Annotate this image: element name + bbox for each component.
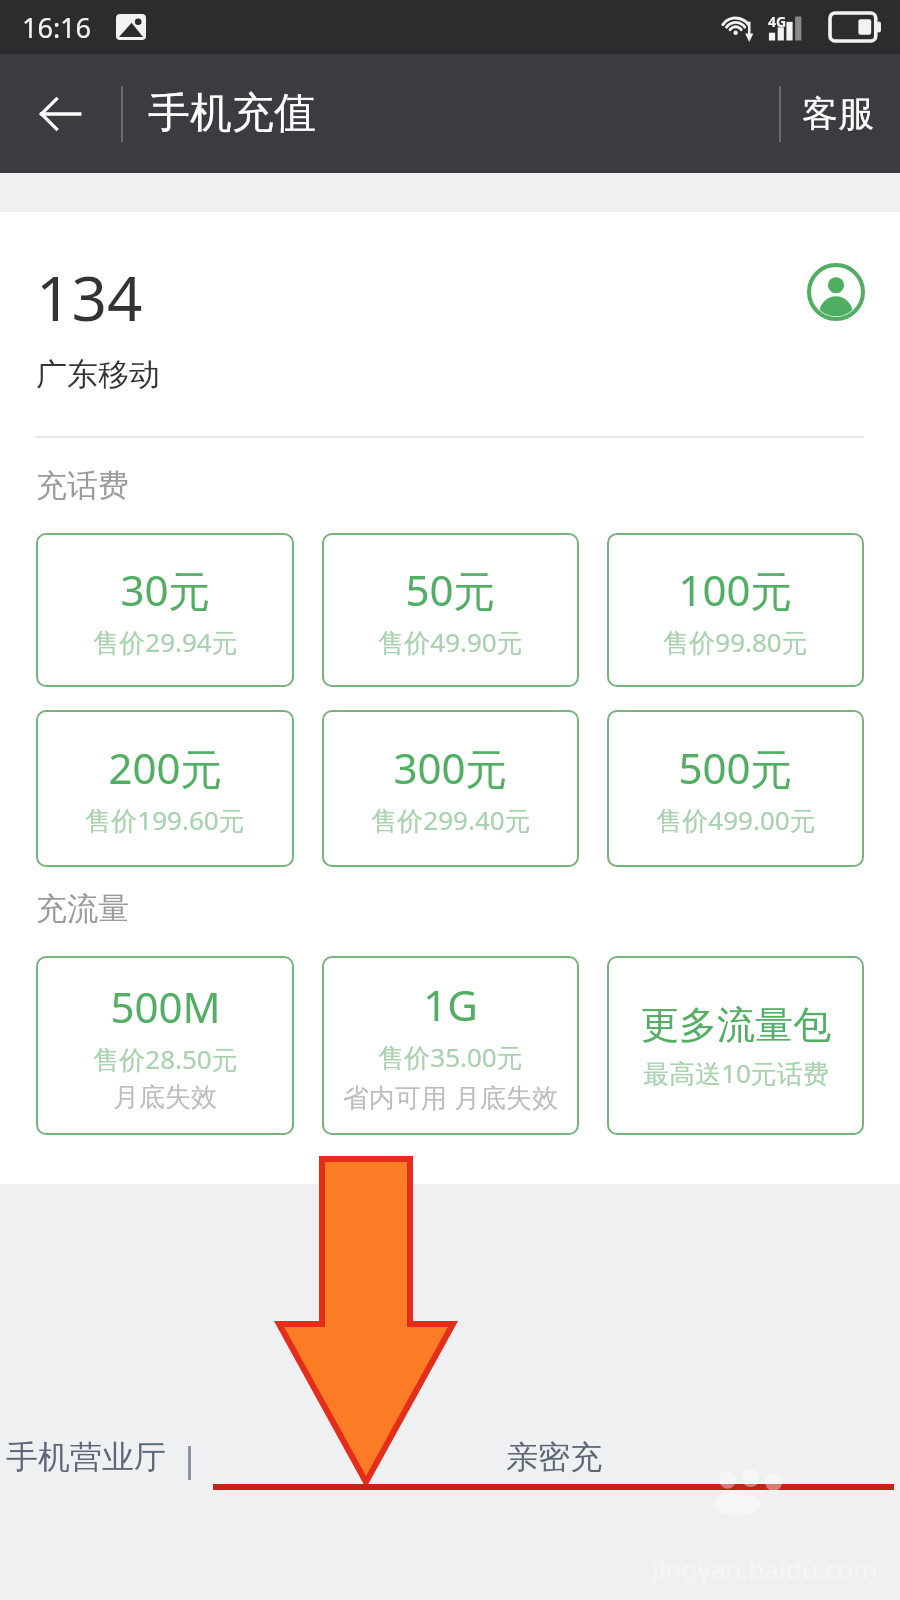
staticText: 售价299.40元 xyxy=(371,802,531,838)
button[interactable]: 客服 xyxy=(776,54,900,173)
staticText: 16:16 xyxy=(22,9,92,46)
staticText: 500M xyxy=(110,978,221,1035)
staticText: 500元 xyxy=(678,739,793,796)
staticText: 1G xyxy=(423,976,478,1033)
staticText: 售价99.80元 xyxy=(663,624,808,660)
button[interactable]: 30元 xyxy=(36,533,294,687)
staticText: 30元 xyxy=(120,561,211,618)
staticText: 更多流量包 xyxy=(641,1001,831,1049)
staticText: 充流量 xyxy=(36,889,129,928)
staticText: 客服 xyxy=(802,91,874,136)
button[interactable]: 200元 xyxy=(36,710,294,867)
button[interactable]: 手机营业厅 xyxy=(0,1437,172,1490)
button[interactable]: 300元 xyxy=(322,710,579,867)
button[interactable]: 100元 xyxy=(607,533,864,687)
staticText: 广东移动 xyxy=(36,355,160,394)
staticText: 手机充值 xyxy=(148,87,316,140)
staticText: 月底失效 xyxy=(113,1081,217,1114)
staticText: 手机营业厅 xyxy=(6,1437,166,1477)
staticText: 亲密充 xyxy=(506,1437,602,1477)
staticText: 200元 xyxy=(108,739,223,796)
button[interactable]: Account xyxy=(802,258,870,326)
staticText: 售价29.94元 xyxy=(93,624,238,660)
button[interactable]: Back xyxy=(16,70,104,158)
button[interactable]: 更多流量包 xyxy=(607,956,864,1135)
staticText: 50元 xyxy=(405,561,496,618)
staticText: 最高送10元话费 xyxy=(643,1055,829,1091)
staticText: 省内可用 月底失效 xyxy=(343,1079,558,1115)
staticText: 售价49.90元 xyxy=(378,624,523,660)
staticText: 充话费 xyxy=(36,466,129,505)
button[interactable]: 亲密充 xyxy=(207,1437,900,1490)
button[interactable]: 1G xyxy=(322,956,579,1135)
button[interactable]: 50元 xyxy=(322,533,579,687)
staticText: 售价499.00元 xyxy=(656,802,816,838)
staticText: 100元 xyxy=(678,561,793,618)
staticText: 售价28.50元 xyxy=(93,1041,238,1077)
staticText: 4G xyxy=(768,12,787,31)
staticText: 134 xyxy=(36,255,143,339)
staticText: 售价35.00元 xyxy=(378,1039,523,1075)
staticText: 售价199.60元 xyxy=(85,802,245,838)
button[interactable]: 500M xyxy=(36,956,294,1135)
button[interactable]: 500元 xyxy=(607,710,864,867)
staticText: 300元 xyxy=(393,739,508,796)
